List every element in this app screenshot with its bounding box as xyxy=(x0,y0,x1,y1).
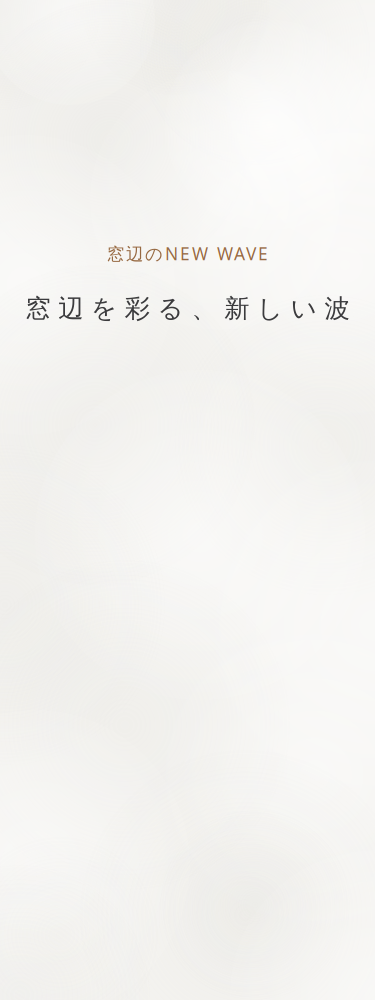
staticText: 窓辺のNEW WAVE xyxy=(107,242,268,265)
staticText: 窓辺を彩る、新しい波 xyxy=(25,293,350,324)
